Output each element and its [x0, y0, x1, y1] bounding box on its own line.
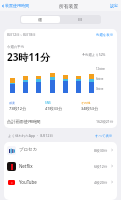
- staticText: 23時11分: [7, 50, 50, 64]
- staticText: 34晈53分: [81, 106, 99, 111]
- staticText: 設定: [110, 3, 118, 8]
- staticText: 所有装置: [59, 3, 79, 9]
- button[interactable]: YouTube: [4, 174, 117, 190]
- staticText: 装置使用時間: [5, 3, 29, 8]
- staticText: YouTube: [19, 179, 37, 185]
- staticText: 73晈12分: [9, 106, 27, 111]
- button[interactable]: 先週を表示: [96, 33, 114, 37]
- staticText: 4晈20分: [94, 180, 108, 185]
- staticText: 41晈33分: [45, 106, 63, 111]
- staticText: 8晈30分: [94, 148, 108, 153]
- staticText: 今週の平均: [7, 45, 25, 49]
- staticText: すべて表示: [95, 134, 113, 138]
- staticText: 162晈21分: [96, 119, 114, 124]
- button[interactable]: 合計画面使用時間: [4, 115, 117, 128]
- button[interactable]: すべて表示: [95, 134, 113, 138]
- staticText: 週: [38, 17, 43, 22]
- button[interactable]: 週: [21, 16, 60, 23]
- staticText: 12時間: [96, 67, 105, 71]
- staticText: 先週を表示: [96, 33, 114, 37]
- button[interactable]: プロセカ: [4, 142, 117, 158]
- staticText: その他: [81, 101, 91, 105]
- button[interactable]: 日: [60, 16, 100, 23]
- staticText: よく使われたApp ・ 8月12日: [8, 133, 53, 138]
- staticText: 合計画面使用時間: [7, 119, 41, 124]
- button[interactable]: Netflix: [4, 158, 117, 174]
- staticText: 6時間: [96, 77, 104, 81]
- staticText: 0時間: [96, 87, 104, 91]
- staticText: 6晈12分: [94, 164, 108, 169]
- button[interactable]: Back: [0, 1, 31, 10]
- button[interactable]: 設定: [107, 1, 121, 10]
- staticText: プロセカ: [19, 147, 37, 153]
- staticText: Netflix: [19, 163, 33, 169]
- staticText: 日: [78, 17, 83, 22]
- staticText: SNS: [45, 101, 51, 105]
- staticText: 娯楽: [9, 101, 15, 105]
- staticText: 先週より52%: [85, 52, 106, 57]
- staticText: 8月12日～8月18日: [7, 32, 36, 37]
